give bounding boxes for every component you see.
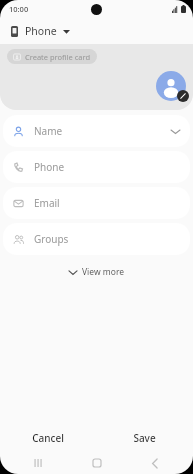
staticText: Email [34, 196, 60, 210]
staticText: Create profile card [25, 52, 91, 62]
staticText: Phone [34, 160, 65, 174]
button[interactable]: Phone [3, 151, 190, 183]
button[interactable]: Email [3, 187, 190, 219]
button[interactable]: View more [61, 262, 133, 282]
staticText: Name [34, 124, 63, 138]
staticText: Groups [34, 232, 69, 246]
staticText: View more [82, 266, 125, 278]
button[interactable]: Name [3, 115, 190, 147]
staticText: 10:00 [9, 4, 29, 14]
staticText: Cancel [32, 431, 64, 445]
button[interactable]: Back [135, 452, 175, 474]
staticText: Phone [25, 24, 57, 38]
button[interactable]: Home [77, 452, 117, 474]
staticText: Save [133, 431, 156, 445]
button[interactable]: Edit profile picture [156, 71, 186, 101]
button[interactable]: Phone [0, 18, 193, 44]
button[interactable]: Recent apps [18, 452, 58, 474]
button[interactable]: Save [96, 424, 193, 452]
button[interactable]: Cancel [0, 424, 96, 452]
button[interactable]: Create profile card [7, 49, 97, 64]
button[interactable]: Groups [3, 223, 190, 255]
